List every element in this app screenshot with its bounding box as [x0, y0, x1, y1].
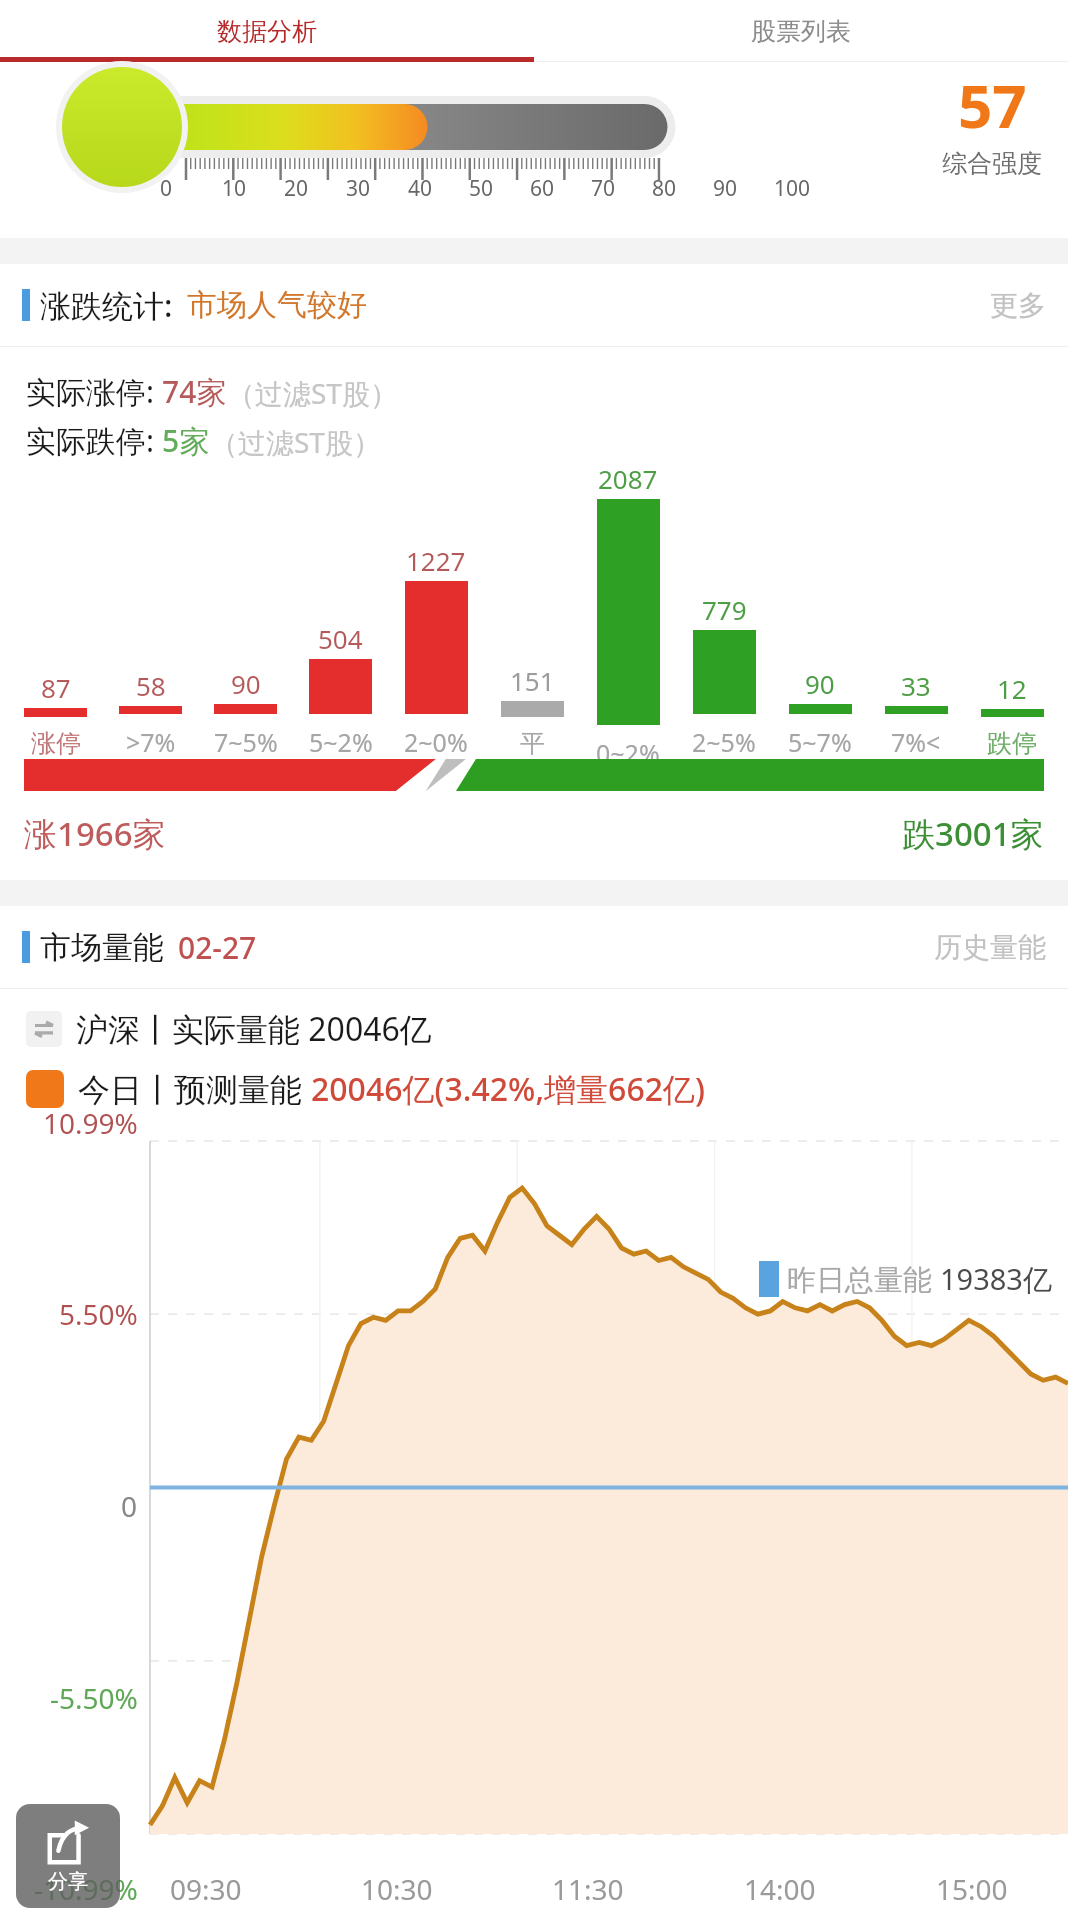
- staticText: 涨停: [31, 728, 81, 759]
- staticText: 20: [284, 174, 309, 203]
- staticText: 504: [318, 621, 363, 656]
- staticText: 0: [121, 1487, 138, 1525]
- staticText: 12: [997, 671, 1027, 706]
- staticText: 09:30: [170, 1870, 242, 1908]
- staticText: 2~5%: [692, 725, 756, 759]
- staticText: （过滤ST股）: [227, 374, 398, 412]
- staticText: 数据分析: [217, 16, 317, 47]
- staticText: 实际跌停:: [26, 420, 162, 461]
- staticText: 跌3001家: [902, 811, 1044, 856]
- staticText: 市场人气较好: [187, 286, 367, 324]
- staticText: -5.50%: [50, 1679, 138, 1717]
- staticText: 10:30: [361, 1870, 433, 1908]
- staticText: 19383亿: [940, 1259, 1052, 1299]
- staticText: 更多: [990, 288, 1046, 323]
- staticText: 综合强度: [942, 148, 1042, 179]
- staticText: 5~2%: [309, 725, 373, 759]
- staticText: 10.99%: [43, 1104, 138, 1142]
- staticText: 2~0%: [404, 725, 468, 759]
- staticText: 90: [713, 174, 738, 203]
- staticText: 涨跌统计:: [40, 284, 173, 326]
- staticText: 15:00: [936, 1870, 1008, 1908]
- staticText: 平: [520, 728, 545, 759]
- staticText: （过滤ST股）: [210, 423, 381, 461]
- staticText: 74家: [162, 371, 227, 412]
- staticText: 02-27: [178, 927, 257, 968]
- staticText: 14:00: [744, 1870, 816, 1908]
- staticText: 市场量能: [40, 928, 164, 967]
- staticText: 股票列表: [751, 16, 851, 47]
- staticText: 1227: [406, 543, 466, 578]
- staticText: 历史量能: [934, 930, 1046, 965]
- staticText: 50: [469, 174, 494, 203]
- staticText: 7~5%: [214, 725, 278, 759]
- staticText: 7%<: [891, 725, 941, 759]
- button[interactable]: 数据分析: [0, 0, 534, 62]
- staticText: 分享: [48, 1869, 88, 1894]
- staticText: 11:30: [552, 1870, 624, 1908]
- staticText: 90: [231, 666, 261, 701]
- staticText: 5家: [162, 420, 210, 461]
- staticText: 60: [530, 174, 555, 203]
- staticText: 33: [901, 668, 931, 703]
- staticText: 70: [591, 174, 616, 203]
- staticText: 涨1966家: [24, 811, 166, 856]
- staticText: 30: [346, 174, 371, 203]
- staticText: 80: [652, 174, 677, 203]
- staticText: 2087: [598, 461, 658, 496]
- staticText: 40: [408, 174, 433, 203]
- button[interactable]: 股票列表: [534, 0, 1068, 62]
- staticText: 实际涨停:: [26, 371, 162, 412]
- staticText: 今日丨预测量能: [78, 1067, 311, 1111]
- staticText: 昨日总量能: [787, 1259, 940, 1299]
- button[interactable]: 涨跌统计:: [0, 264, 1068, 346]
- staticText: 779: [702, 592, 747, 627]
- staticText: 151: [510, 663, 555, 698]
- button[interactable]: 分享: [16, 1804, 120, 1908]
- staticText: 5.50%: [59, 1295, 138, 1333]
- staticText: >7%: [126, 725, 176, 759]
- staticText: 10: [222, 174, 247, 203]
- staticText: 0~2%: [596, 736, 660, 759]
- staticText: 100: [774, 174, 811, 203]
- staticText: 沪深丨实际量能 20046亿: [76, 1007, 432, 1051]
- staticText: 58: [136, 668, 166, 703]
- button[interactable]: 市场量能: [0, 906, 1068, 988]
- staticText: 57: [958, 64, 1027, 146]
- staticText: -10.99%: [34, 1870, 138, 1908]
- staticText: 87: [41, 670, 71, 705]
- staticText: 5~7%: [788, 725, 852, 759]
- staticText: 20046亿(3.42%,增量662亿): [311, 1067, 706, 1111]
- staticText: 90: [805, 666, 835, 701]
- staticText: 0: [160, 174, 173, 203]
- staticText: 跌停: [987, 728, 1037, 759]
